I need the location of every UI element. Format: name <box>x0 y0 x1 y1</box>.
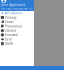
staticText: Drafts <box>5 41 13 46</box>
button[interactable]: All inboxes <box>0 11 34 15</box>
staticText: Snoozed <box>5 33 18 37</box>
button[interactable]: Sent <box>0 37 34 41</box>
button[interactable]: Primary <box>0 15 34 20</box>
staticText: Jane Appleseed <box>1 3 25 7</box>
staticText: Primary <box>5 15 17 20</box>
staticText: Promotions <box>5 24 22 28</box>
button[interactable]: Starred <box>0 28 34 33</box>
button[interactable]: Snoozed <box>0 33 34 37</box>
staticText: Social <box>5 20 14 24</box>
staticText: Sent <box>5 37 12 41</box>
staticText: All inboxes <box>5 11 22 15</box>
button[interactable]: Promotions <box>0 24 34 28</box>
staticText: jane.appleseed@gmail.com <box>1 7 33 14</box>
staticText: Starred <box>5 28 16 33</box>
button[interactable]: Drafts <box>0 41 34 46</box>
button[interactable]: Social <box>0 20 34 24</box>
